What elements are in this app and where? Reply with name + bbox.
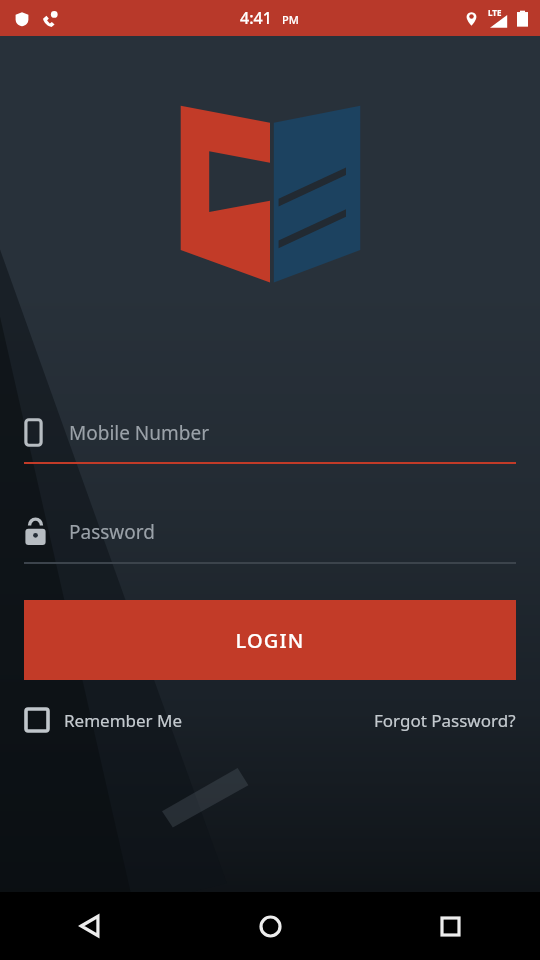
staticText: Mobile Number [69,420,210,446]
button[interactable]: Remember Me [24,707,183,733]
staticText: LOGIN [235,627,305,654]
staticText: Password [69,519,155,545]
staticText: Forgot Password? [374,709,516,732]
staticText: Remember Me [64,709,183,732]
button[interactable]: Home [180,892,360,960]
button[interactable]: Back [0,892,180,960]
button[interactable]: Password [24,500,516,564]
staticText: LTE [488,7,502,18]
staticText: 4:41 [240,7,272,29]
staticText: PM [282,12,299,27]
button[interactable]: LOGIN [24,600,516,680]
button[interactable]: Forgot Password? [374,709,516,732]
button[interactable]: Mobile Number [24,400,516,464]
button[interactable]: Recent apps [360,892,540,960]
